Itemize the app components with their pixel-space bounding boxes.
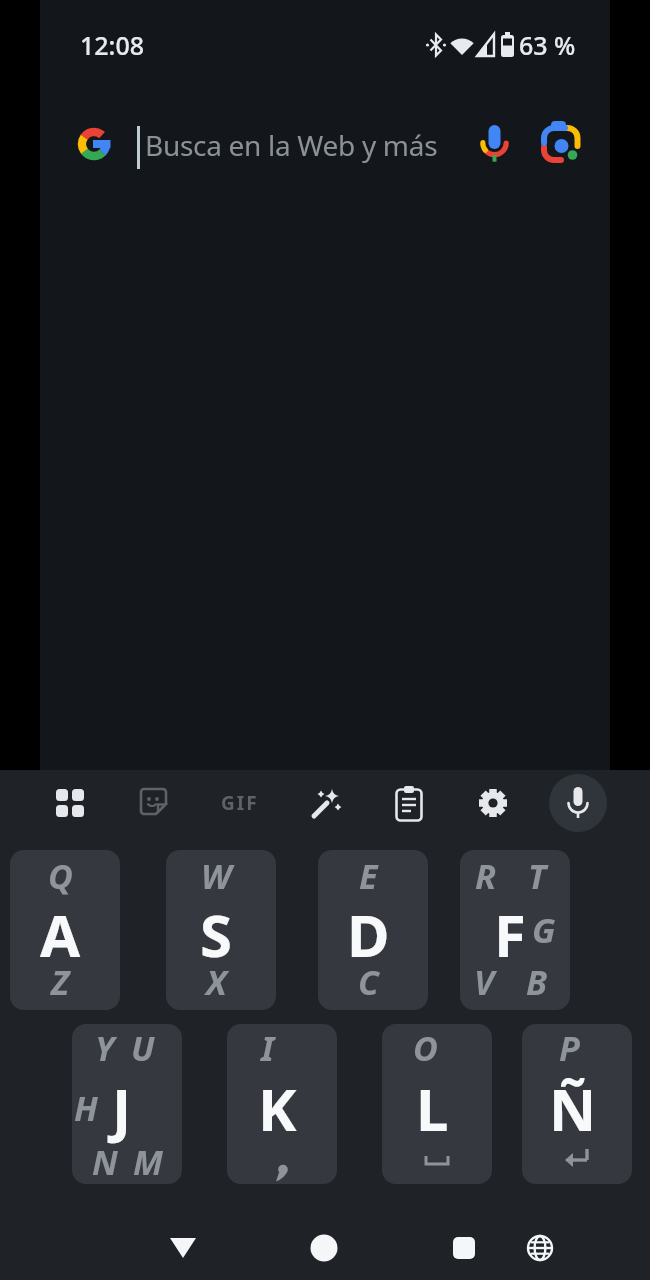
staticText: 63 %	[519, 28, 576, 62]
staticText: A	[40, 895, 81, 974]
staticText: Q	[48, 853, 73, 899]
staticText: Busca en la Web y más	[145, 126, 438, 164]
staticText: G	[532, 907, 556, 953]
staticText: E	[359, 853, 378, 899]
staticText: O	[413, 1025, 438, 1071]
button[interactable]: Ñ	[522, 1024, 632, 1184]
staticText: P	[559, 1025, 580, 1071]
staticText: L	[416, 1069, 449, 1148]
button[interactable]: GIF	[215, 788, 265, 818]
staticText: F	[494, 895, 526, 974]
staticText: T	[528, 853, 547, 899]
staticText: H	[74, 1085, 98, 1131]
button[interactable]	[549, 774, 607, 832]
button[interactable]	[478, 788, 508, 818]
staticText: 12:08	[80, 28, 145, 62]
button[interactable]	[541, 118, 585, 168]
button[interactable]	[302, 1226, 346, 1270]
button[interactable]: S	[166, 850, 276, 1010]
button[interactable]: J	[72, 1024, 182, 1184]
staticText: C	[358, 959, 379, 1005]
button[interactable]: Busca en la Web y más	[145, 110, 455, 180]
staticText: B	[526, 959, 548, 1005]
button[interactable]: K	[227, 1024, 337, 1184]
staticText: Z	[51, 959, 70, 1005]
button[interactable]	[160, 1226, 206, 1270]
button[interactable]	[140, 788, 170, 818]
button[interactable]	[308, 786, 344, 822]
staticText: U	[131, 1025, 155, 1071]
button[interactable]	[442, 1226, 486, 1270]
staticText: N	[92, 1139, 118, 1184]
button[interactable]: D	[318, 850, 428, 1010]
button[interactable]: A	[10, 850, 120, 1010]
button[interactable]: F	[460, 850, 570, 1010]
staticText: J	[112, 1069, 132, 1148]
staticText: I	[261, 1025, 275, 1071]
button[interactable]	[518, 1226, 562, 1270]
staticText: S	[200, 895, 232, 974]
staticText: GIF	[221, 790, 259, 816]
staticText: Y	[95, 1025, 115, 1071]
button[interactable]	[470, 118, 519, 170]
staticText: R	[475, 853, 497, 899]
button[interactable]	[74, 124, 114, 164]
button[interactable]: L	[382, 1024, 492, 1184]
staticText: M	[133, 1139, 163, 1184]
staticText: K	[258, 1069, 297, 1148]
staticText: W	[201, 853, 232, 899]
button[interactable]	[395, 786, 425, 822]
staticText: X	[206, 959, 227, 1005]
staticText: D	[347, 895, 390, 974]
staticText: V	[474, 959, 495, 1005]
staticText: Ñ	[549, 1069, 596, 1148]
button[interactable]	[56, 789, 84, 817]
